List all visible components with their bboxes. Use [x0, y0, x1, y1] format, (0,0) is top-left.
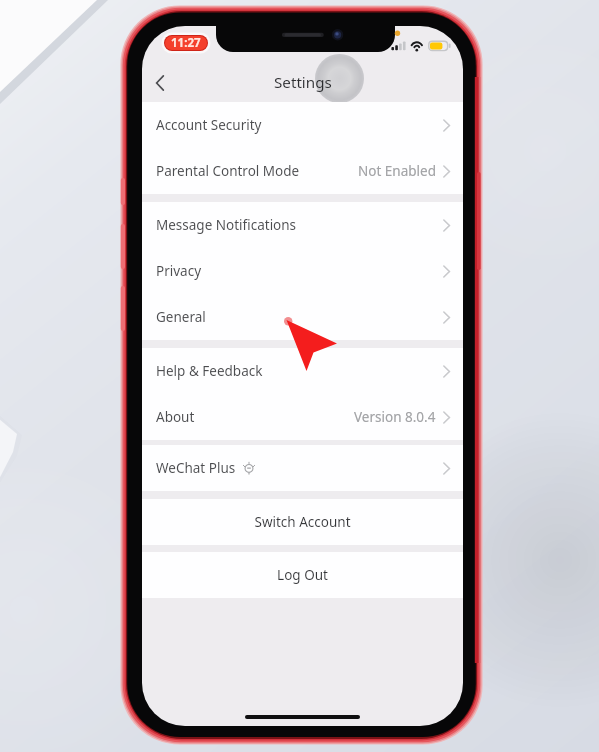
- button[interactable]: WeChat Plus: [142, 445, 463, 491]
- staticText: About: [156, 408, 195, 426]
- button[interactable]: Back: [145, 68, 175, 98]
- button[interactable]: Privacy: [142, 248, 463, 294]
- staticText: Version 8.0.4: [354, 408, 436, 426]
- staticText: Parental Control Mode: [156, 162, 300, 180]
- button[interactable]: About: [142, 394, 463, 440]
- staticText: 11:27: [171, 35, 201, 51]
- staticText: Account Security: [156, 116, 262, 134]
- button[interactable]: AssistiveTouch: [315, 54, 364, 103]
- button[interactable]: Parental Control Mode: [142, 148, 463, 194]
- button[interactable]: Switch Account: [142, 499, 463, 545]
- staticText: Privacy: [156, 262, 202, 280]
- staticText: Switch Account: [254, 513, 351, 531]
- staticText: Settings: [274, 72, 332, 93]
- staticText: Log Out: [277, 566, 328, 584]
- button[interactable]: Message Notifications: [142, 202, 463, 248]
- button[interactable]: Account Security: [142, 102, 463, 148]
- staticText: Help & Feedback: [156, 362, 263, 380]
- button[interactable]: Log Out: [142, 552, 463, 598]
- staticText: General: [156, 308, 206, 326]
- button[interactable]: Help & Feedback: [142, 348, 463, 394]
- staticText: WeChat Plus: [156, 459, 236, 477]
- button[interactable]: General: [142, 294, 463, 340]
- staticText: Message Notifications: [156, 216, 297, 234]
- staticText: Not Enabled: [358, 162, 436, 180]
